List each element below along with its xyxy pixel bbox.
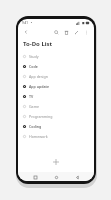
button[interactable]: Back xyxy=(22,28,30,36)
button[interactable]: Home xyxy=(52,173,60,181)
staticText: 9:41 xyxy=(22,21,28,25)
staticText: App design xyxy=(29,74,48,79)
staticText: Coding xyxy=(29,124,42,129)
staticText: Study xyxy=(29,54,39,59)
staticText: Homework xyxy=(29,134,48,139)
staticText: Code xyxy=(29,64,38,69)
button[interactable]: Edit xyxy=(72,28,80,36)
staticText: Game xyxy=(29,104,40,109)
button[interactable]: Delete xyxy=(62,28,70,36)
button[interactable]: App update xyxy=(18,81,94,91)
button[interactable]: Programming xyxy=(18,111,94,121)
button[interactable]: App design xyxy=(18,71,94,81)
button[interactable]: Coding xyxy=(18,121,94,131)
button[interactable]: Add task xyxy=(50,156,62,168)
staticText: To-Do List xyxy=(23,40,53,48)
button[interactable]: TV xyxy=(18,91,94,101)
button[interactable]: More options xyxy=(82,28,90,36)
button[interactable]: Study xyxy=(18,51,94,61)
staticText: TV xyxy=(29,94,34,99)
button[interactable]: Game xyxy=(18,101,94,111)
button[interactable]: Code xyxy=(18,61,94,71)
button[interactable]: Search xyxy=(52,28,60,36)
staticText: Programming xyxy=(29,114,53,119)
button[interactable]: Recent apps xyxy=(31,173,39,181)
button[interactable]: Homework xyxy=(18,131,94,141)
button[interactable]: Back xyxy=(73,173,81,181)
staticText: App update xyxy=(29,84,49,89)
